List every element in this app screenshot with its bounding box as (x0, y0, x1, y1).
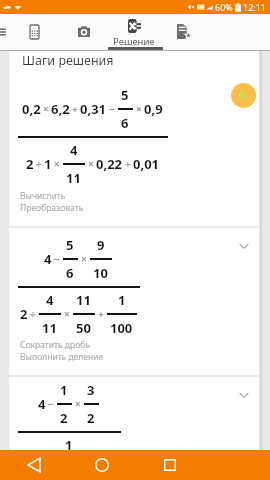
button[interactable]: Calculator (8, 14, 60, 51)
staticText: 10 (93, 264, 108, 282)
staticText: 4 (70, 141, 78, 159)
button[interactable]: Шаги решения (9, 51, 259, 226)
staticText: 11 (66, 169, 81, 187)
button[interactable]: Home (68, 450, 136, 480)
staticText: 6 (66, 264, 74, 282)
staticText: Выполнить деление (20, 351, 104, 363)
staticText: 9 (97, 236, 105, 254)
staticText: × (88, 157, 94, 171)
button[interactable]: Hint (231, 83, 256, 108)
staticText: 0,31 (80, 100, 107, 118)
staticText: 4 (46, 291, 54, 309)
staticText: × (75, 397, 81, 411)
staticText: 11 (42, 319, 57, 337)
staticText: 1 (44, 155, 52, 173)
staticText: 2 (60, 409, 68, 427)
staticText: × (136, 102, 142, 116)
staticText: 0,22 (96, 155, 123, 173)
staticText: × (64, 307, 70, 321)
staticText: ÷ (125, 157, 131, 171)
button[interactable]: Notes (158, 14, 210, 51)
staticText: ÷ (30, 307, 36, 321)
button[interactable]: Back (0, 450, 68, 480)
staticText: ÷ (98, 307, 104, 321)
staticText: Шаги решения (22, 52, 114, 69)
staticText: 0,9 (144, 100, 163, 118)
staticText: 2 (26, 155, 34, 173)
staticText: 60% (215, 1, 233, 13)
staticText: 1 (60, 381, 68, 399)
staticText: Вычислить (20, 190, 66, 202)
other: Expand (238, 240, 250, 252)
staticText: 2 (87, 409, 95, 427)
other: Expand (238, 389, 250, 401)
staticText: 0,2 (22, 100, 41, 118)
button[interactable]: Решение (108, 14, 160, 51)
staticText: 4 (38, 395, 46, 413)
staticText: 5 (66, 236, 74, 254)
staticText: ÷ (36, 157, 42, 171)
staticText: 6,2 (51, 100, 70, 118)
staticText: 1 (65, 436, 73, 454)
staticText: 0,01 (133, 155, 160, 173)
staticText: 100 (110, 319, 133, 337)
staticText: 50 (76, 319, 91, 337)
staticText: 11 (76, 291, 91, 309)
staticText: Решение (113, 35, 155, 48)
button[interactable]: Recents (136, 450, 204, 480)
staticText: × (43, 102, 49, 116)
button[interactable]: Camera (58, 14, 110, 51)
staticText: − (109, 102, 115, 116)
staticText: 2 (20, 305, 28, 323)
staticText: 6 (121, 114, 129, 132)
staticText: Преобразовать (20, 202, 84, 214)
staticText: 5 (121, 86, 129, 104)
staticText: 3 (87, 381, 95, 399)
staticText: ÷ (72, 102, 78, 116)
staticText: × (81, 252, 87, 266)
button[interactable]: 4 (9, 377, 259, 450)
staticText: 12:11 (243, 1, 267, 13)
staticText: Сократить дробь (20, 339, 90, 351)
staticText: − (54, 252, 60, 266)
staticText: 1 (118, 291, 126, 309)
button[interactable]: Menu (0, 14, 26, 51)
staticText: × (54, 157, 60, 171)
staticText: − (48, 397, 54, 411)
button[interactable]: 4 (9, 228, 259, 375)
staticText: 4 (44, 250, 52, 268)
